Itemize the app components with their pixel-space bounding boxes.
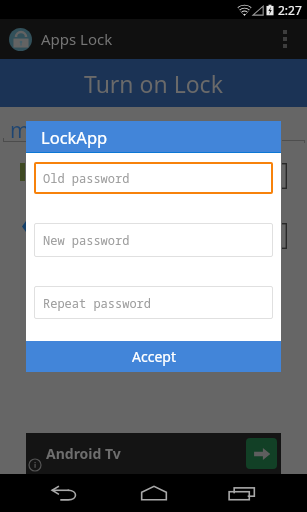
staticText: Apps Lock <box>41 29 113 49</box>
staticText: LockApp <box>41 126 108 148</box>
staticText: 2:27 <box>278 2 302 18</box>
staticText: Accept <box>132 347 176 366</box>
staticText: Turn on Lock <box>84 68 223 99</box>
button[interactable]: Old password <box>34 162 273 194</box>
staticText: Android Tv <box>46 444 121 463</box>
button[interactable]: New password <box>34 223 273 257</box>
staticText: Repeat password <box>43 295 152 311</box>
button[interactable]: Home <box>130 474 178 512</box>
staticText: m <box>10 116 30 145</box>
button[interactable]: Repeat password <box>34 286 273 319</box>
button[interactable]: Ad info <box>28 458 42 472</box>
button[interactable]: Accept <box>26 341 281 372</box>
staticText: Old password <box>43 170 130 186</box>
button[interactable]: Back <box>41 474 89 512</box>
button[interactable]: More options <box>283 30 287 48</box>
button[interactable]: Install <box>246 438 277 469</box>
button[interactable]: Recents <box>218 474 266 512</box>
staticText: New password <box>43 232 130 248</box>
